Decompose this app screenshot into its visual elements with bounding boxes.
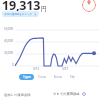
staticText: 3/13: [33, 67, 40, 71]
staticText: 19,313: [2, 0, 41, 14]
staticText: 6カ月: [54, 75, 63, 79]
staticText: 3/27: [62, 67, 69, 71]
button[interactable]: 6カ月: [51, 74, 65, 80]
button[interactable]: 今日の運用益をチェック: [2, 11, 39, 17]
staticText: 今までの運用損益: [53, 92, 80, 96]
button[interactable]: Info: [82, 92, 86, 96]
staticText: 今日の運用益をチェック: [4, 13, 33, 16]
button[interactable]: Download: [82, 0, 96, 12]
staticText: 1年: [70, 75, 75, 79]
button[interactable]: 1年: [67, 74, 78, 80]
staticText: 30,000: [4, 51, 14, 55]
staticText: 1週間: [23, 75, 31, 79]
staticText: 1カ月: [38, 75, 47, 79]
button[interactable]: 1カ月: [35, 74, 49, 80]
staticText: 40,000: [4, 39, 14, 43]
staticText: 追加した残高金額: [4, 93, 31, 97]
button[interactable]: 1週間: [19, 74, 34, 80]
staticText: 0: [12, 63, 14, 67]
staticText: 50,000: [4, 27, 14, 31]
staticText: 円: [41, 5, 47, 13]
